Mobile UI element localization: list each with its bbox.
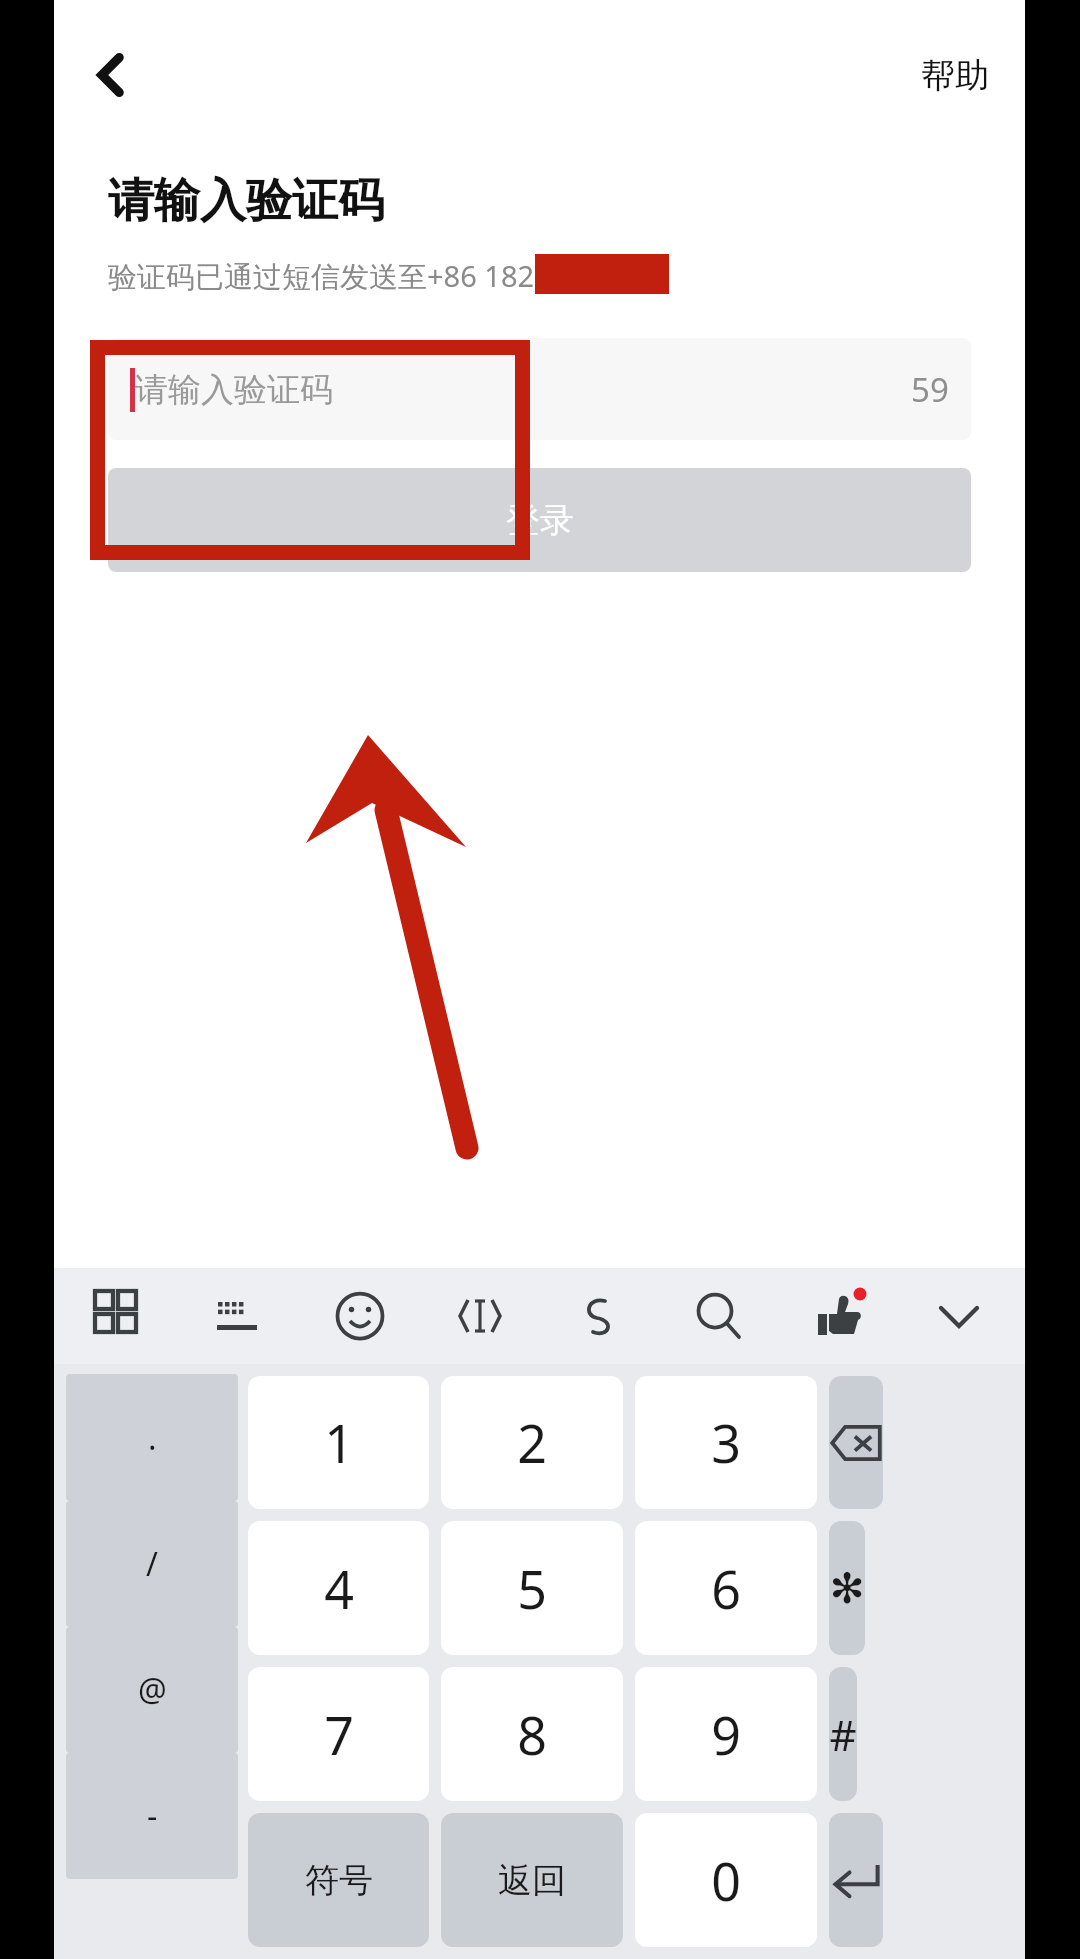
staticText: 0 <box>711 1845 741 1916</box>
button[interactable]: - <box>66 1753 238 1879</box>
staticText: 9 <box>711 1699 741 1770</box>
button[interactable]: 帮助 <box>905 42 1005 109</box>
button[interactable]: # <box>829 1667 857 1801</box>
button[interactable]: . <box>66 1374 238 1501</box>
button[interactable]: 符号 <box>248 1813 429 1947</box>
staticText: 符号 <box>305 1859 373 1902</box>
staticText: 7 <box>324 1699 354 1770</box>
staticText: 4 <box>324 1553 354 1624</box>
button[interactable]: 59 <box>911 367 949 412</box>
staticText: 5 <box>517 1553 547 1624</box>
button[interactable]: Apps <box>82 1278 158 1354</box>
button[interactable]: Search <box>681 1278 757 1354</box>
staticText: 6 <box>711 1553 741 1624</box>
button[interactable]: ✻ <box>829 1521 865 1655</box>
button[interactable]: 5 <box>441 1521 623 1655</box>
staticText: @ <box>138 1668 167 1712</box>
staticText: 返回 <box>498 1859 566 1902</box>
button[interactable]: 8 <box>441 1667 623 1801</box>
staticText: ✻ <box>829 1564 865 1613</box>
staticText: / <box>146 1542 158 1586</box>
button[interactable]: 6 <box>635 1521 817 1655</box>
staticText: # <box>829 1706 857 1763</box>
staticText: 请输入验证码 <box>108 172 384 230</box>
button[interactable]: 7 <box>248 1667 429 1801</box>
button[interactable]: 0 <box>635 1813 817 1947</box>
staticText: 2 <box>517 1407 547 1478</box>
button[interactable]: Enter <box>829 1813 883 1947</box>
button[interactable]: 9 <box>635 1667 817 1801</box>
button[interactable]: Emoji <box>322 1278 398 1354</box>
button[interactable]: Attach <box>561 1278 637 1354</box>
button[interactable]: 请输入验证码 <box>108 338 971 440</box>
staticText: 8 <box>517 1699 547 1770</box>
staticText: 3 <box>711 1407 741 1478</box>
staticText: 帮助 <box>921 54 989 97</box>
button[interactable]: 4 <box>248 1521 429 1655</box>
staticText: - <box>147 1794 158 1838</box>
staticText: 1 <box>324 1407 354 1478</box>
button[interactable]: Thumbs up <box>801 1278 877 1354</box>
button[interactable]: 1 <box>248 1376 429 1509</box>
button[interactable]: Back <box>68 32 154 118</box>
staticText: . <box>148 1416 157 1460</box>
staticText: 登录 <box>506 499 574 542</box>
staticText: 请输入验证码 <box>135 369 333 411</box>
staticText: 59 <box>911 367 949 412</box>
button[interactable]: 3 <box>635 1376 817 1509</box>
button[interactable]: 2 <box>441 1376 623 1509</box>
button[interactable]: 返回 <box>441 1813 623 1947</box>
button[interactable]: Backspace <box>829 1376 883 1509</box>
button[interactable]: Keyboard <box>202 1278 278 1354</box>
staticText: 验证码已通过短信发送至+86 182 <box>108 256 535 296</box>
button[interactable]: @ <box>66 1627 238 1753</box>
button[interactable]: 登录 <box>108 468 971 572</box>
button[interactable]: Hide keyboard <box>921 1278 997 1354</box>
button[interactable]: Text cursor <box>442 1278 518 1354</box>
button[interactable]: / <box>66 1501 238 1627</box>
